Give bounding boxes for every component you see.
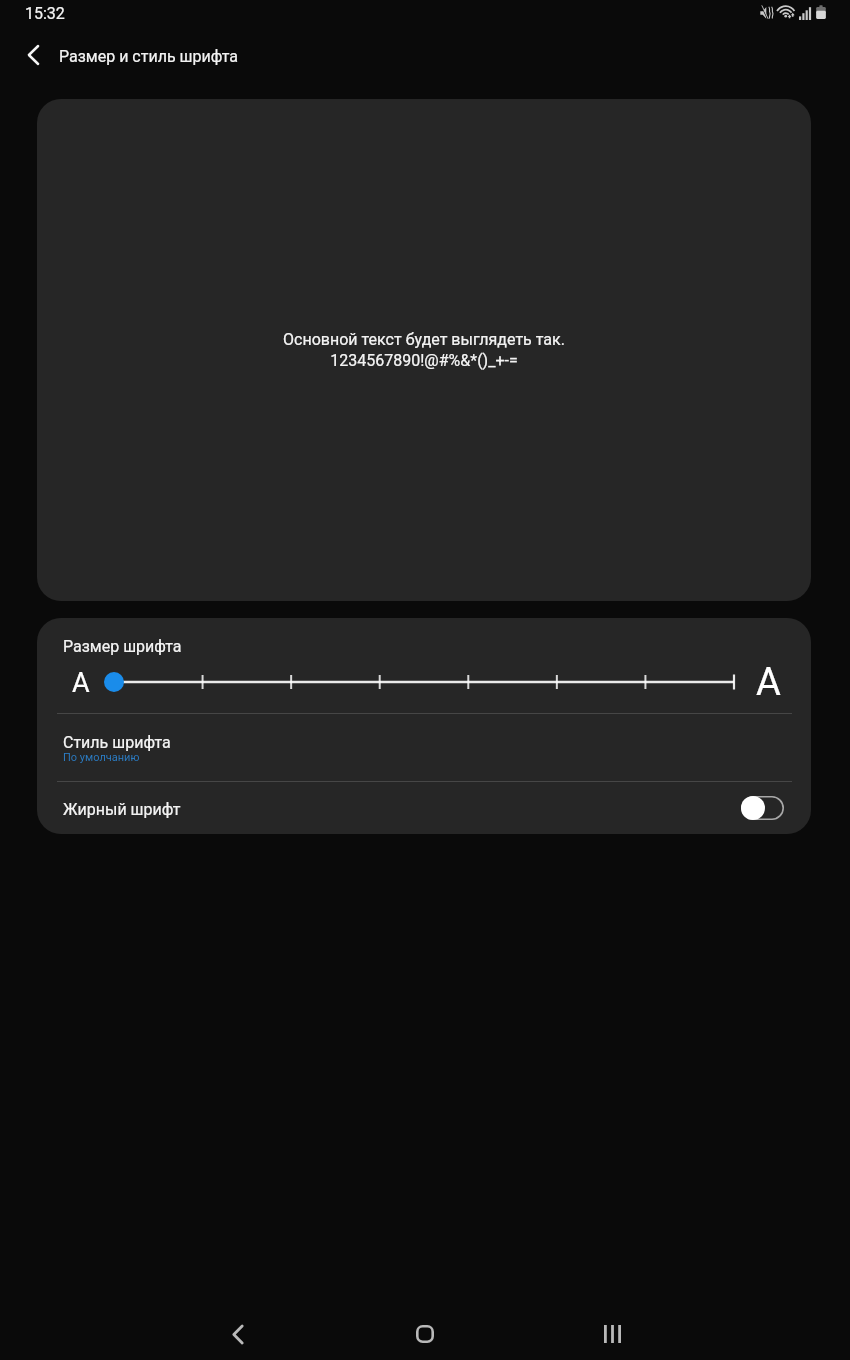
button[interactable]: Bold font <box>741 796 784 820</box>
button[interactable]: Font size slider <box>97 664 757 700</box>
button[interactable]: Жирный шрифт <box>37 782 811 834</box>
staticText: 15:32 <box>25 4 65 23</box>
staticText: A <box>756 660 781 705</box>
staticText: Размер шрифта <box>63 637 182 656</box>
button[interactable]: Стиль шрифта <box>37 714 811 781</box>
staticText: Жирный шрифт <box>63 800 181 819</box>
staticText: A <box>72 667 90 699</box>
button[interactable]: Home <box>397 1306 453 1360</box>
staticText: Стиль шрифта <box>63 733 171 752</box>
button[interactable]: Back <box>11 33 55 77</box>
staticText: По умолчанию <box>63 751 140 764</box>
staticText: Основной текст будет выглядеть так. 1234… <box>283 330 565 370</box>
button[interactable]: Back <box>210 1306 266 1360</box>
button[interactable]: Recent apps <box>584 1306 640 1360</box>
staticText: Размер и стиль шрифта <box>59 47 238 66</box>
